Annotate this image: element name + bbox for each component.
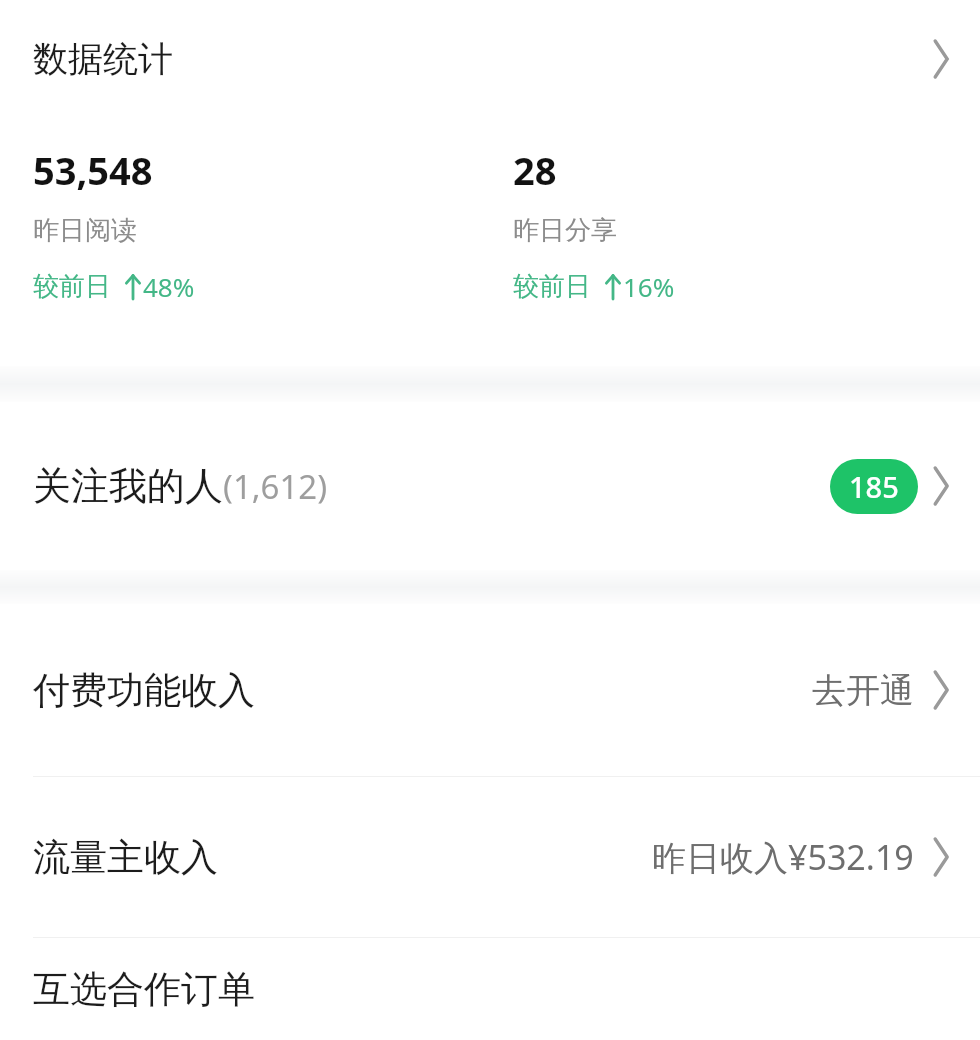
staticText: 昨日阅读	[33, 214, 137, 247]
button[interactable]: 流量主收入	[0, 777, 980, 937]
staticText: 付费功能收入	[33, 667, 255, 714]
staticText: 较前日	[513, 270, 591, 303]
button[interactable]: 数据统计	[0, 0, 980, 118]
staticText: 昨日收入¥532.19	[652, 834, 914, 880]
button[interactable]: 互选合作订单	[0, 938, 980, 1040]
staticText: 关注我的人(1,612)	[33, 462, 328, 510]
staticText: 16%	[623, 269, 675, 304]
button[interactable]: 关注我的人(1,612)	[0, 402, 980, 570]
staticText: 较前日	[33, 270, 111, 303]
staticText: 48%	[143, 269, 195, 304]
other: 数据统计	[922, 30, 962, 88]
button[interactable]: 付费功能收入	[0, 604, 980, 776]
other: 付费功能收入	[922, 661, 962, 719]
other: 流量主收入	[922, 828, 962, 886]
staticText: 去开通	[812, 669, 914, 712]
staticText: 流量主收入	[33, 834, 218, 881]
other: 关注我的人	[922, 457, 962, 515]
staticText: 互选合作订单	[33, 966, 255, 1013]
staticText: 185	[849, 467, 899, 506]
staticText: 昨日分享	[513, 214, 617, 247]
staticText: 28	[513, 144, 557, 196]
staticText: 数据统计	[33, 37, 173, 81]
staticText: 53,548	[33, 144, 153, 196]
